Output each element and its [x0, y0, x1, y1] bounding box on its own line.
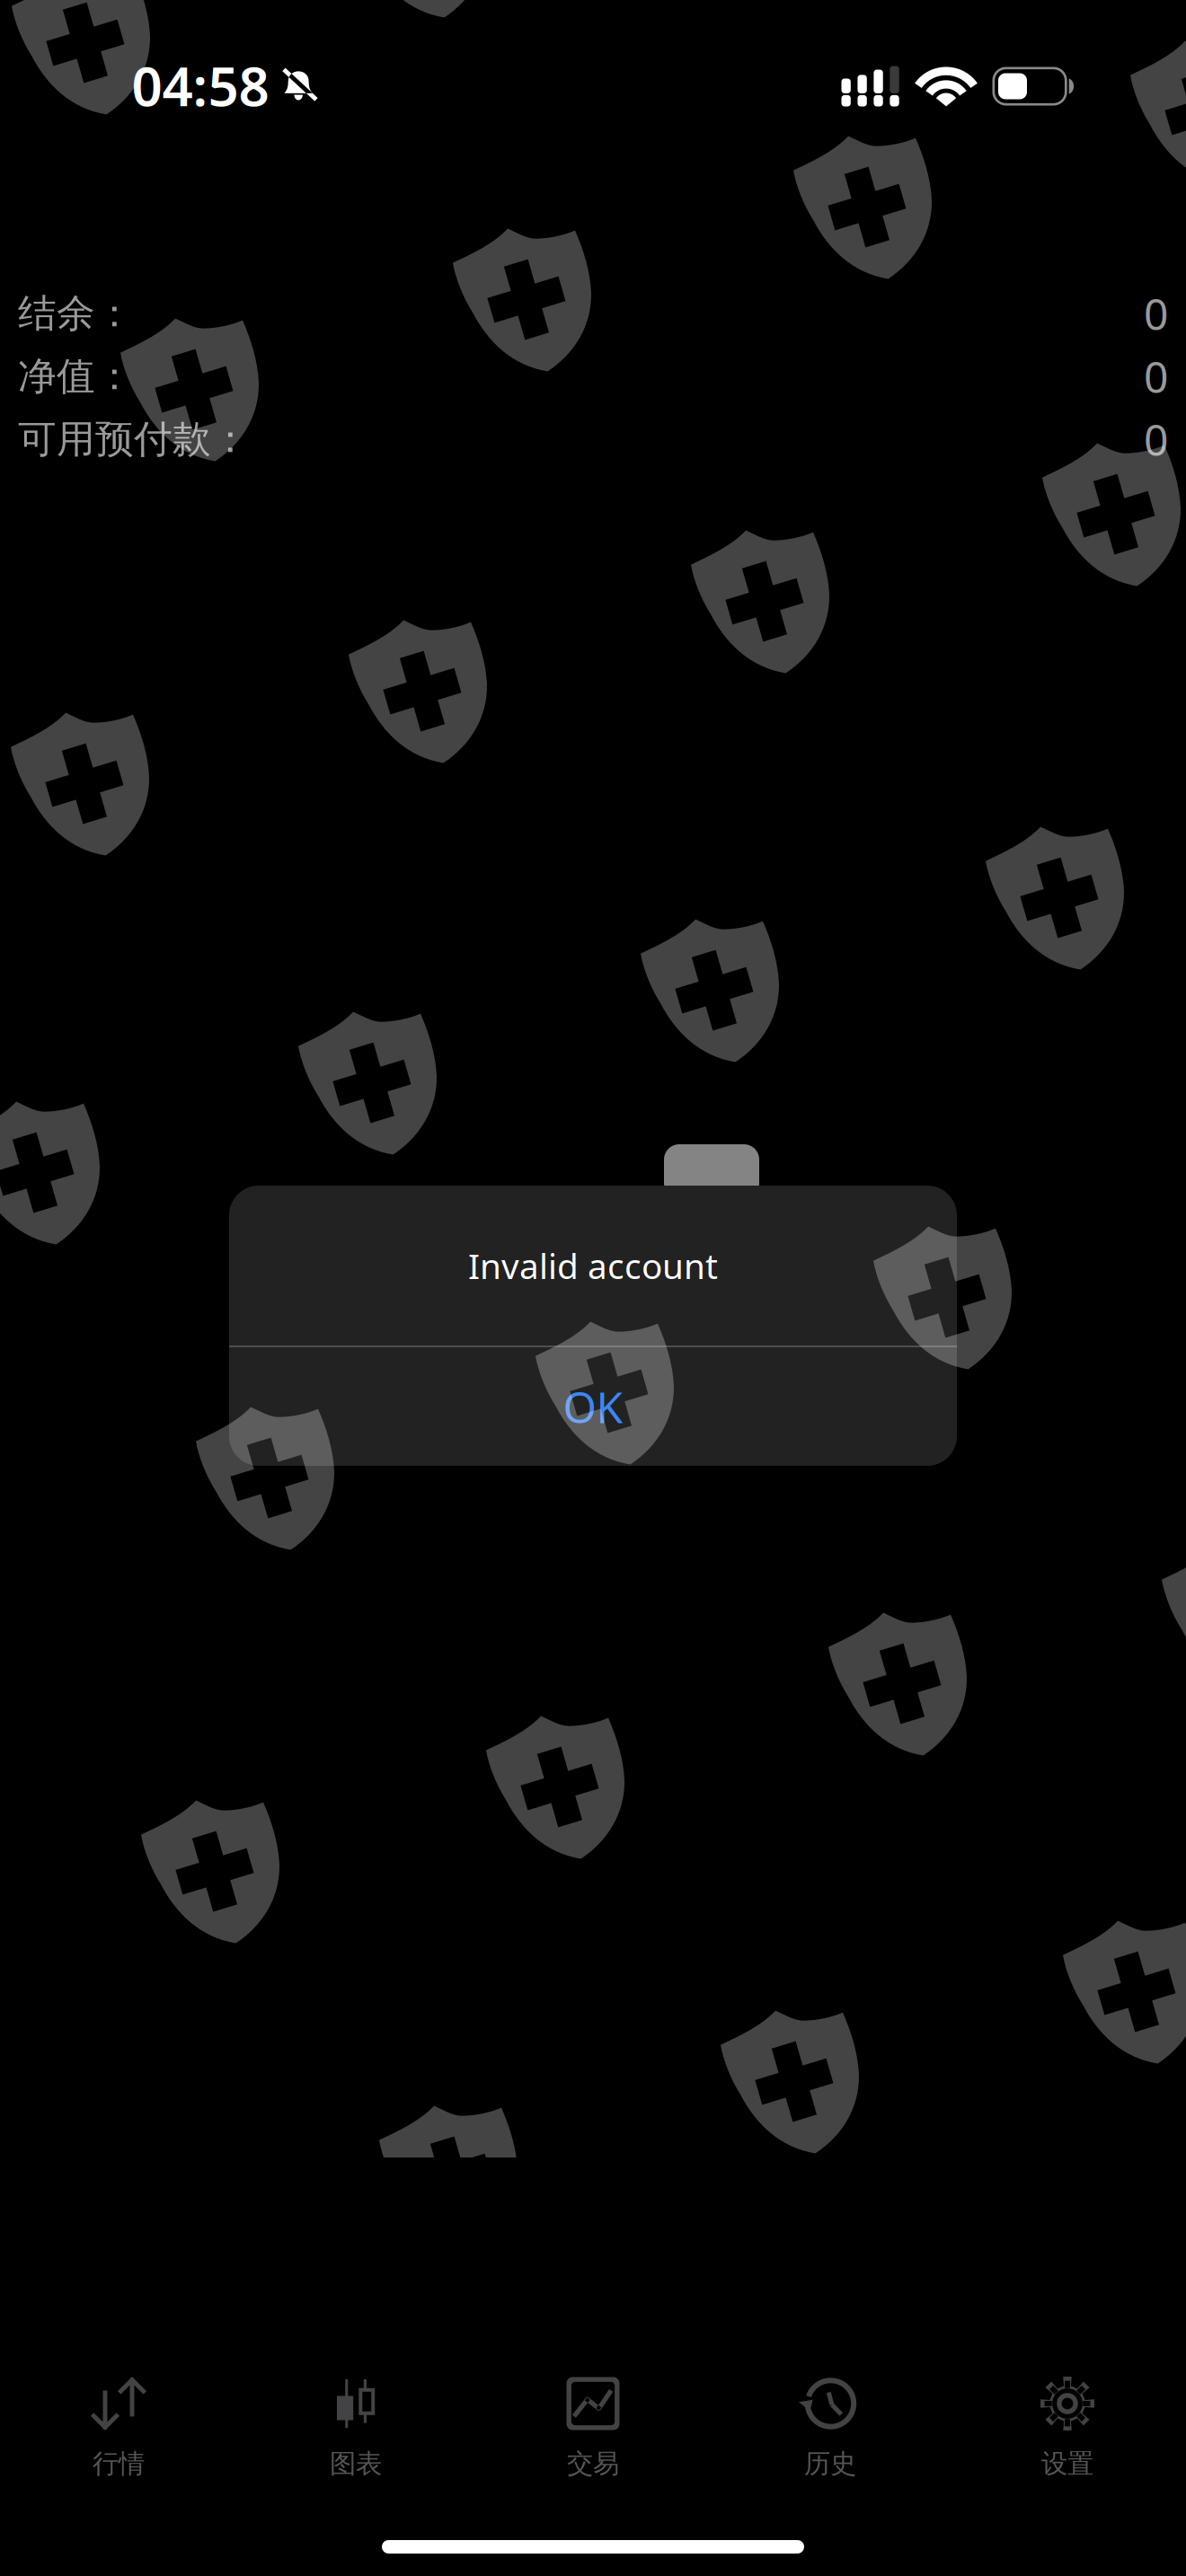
- staticText: 04:58: [132, 50, 269, 121]
- button[interactable]: 交易: [474, 2342, 712, 2486]
- staticText: OK: [563, 1378, 623, 1435]
- staticText: 设置: [1041, 2448, 1093, 2480]
- button[interactable]: 历史: [712, 2342, 949, 2486]
- button[interactable]: OK: [229, 1347, 957, 1466]
- staticText: 0: [1144, 348, 1168, 405]
- staticText: 0: [1144, 285, 1168, 342]
- staticText: 0: [1144, 411, 1168, 468]
- staticText: 交易: [567, 2448, 619, 2480]
- staticText: Invalid account: [468, 1242, 718, 1289]
- staticText: 行情: [93, 2448, 145, 2480]
- button[interactable]: 图表: [237, 2342, 474, 2486]
- button[interactable]: 行情: [0, 2342, 237, 2486]
- staticText: 结余：: [18, 290, 134, 337]
- staticText: 可用预付款：: [18, 416, 250, 463]
- staticText: 历史: [804, 2448, 856, 2480]
- staticText: 图表: [330, 2448, 382, 2480]
- button[interactable]: 设置: [949, 2342, 1186, 2486]
- staticText: 净值：: [18, 353, 134, 400]
